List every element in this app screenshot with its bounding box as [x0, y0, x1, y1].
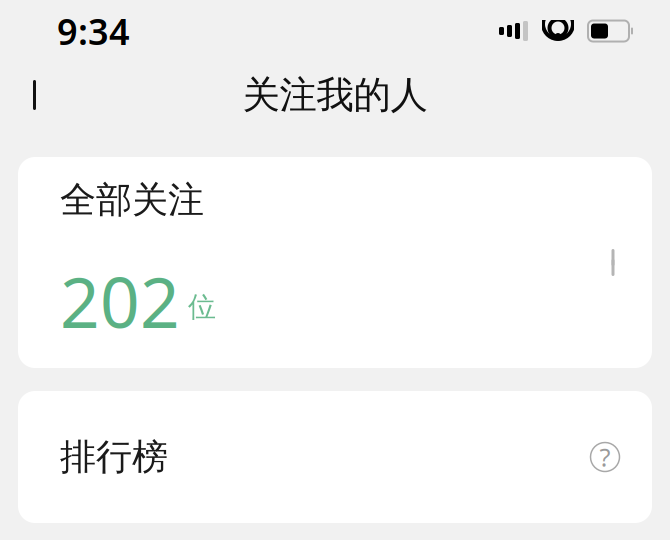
staticText: 全部关注: [60, 178, 204, 222]
staticText: 202: [60, 255, 180, 347]
button[interactable]: Back: [12, 68, 66, 122]
staticText: 位: [188, 290, 216, 324]
button[interactable]: 全部关注: [18, 157, 652, 368]
staticText: 关注我的人: [242, 72, 427, 118]
button[interactable]: Help: [583, 435, 627, 479]
staticText: ?: [599, 440, 610, 474]
staticText: 9:34: [57, 7, 130, 55]
staticText: 排行榜: [60, 435, 168, 479]
